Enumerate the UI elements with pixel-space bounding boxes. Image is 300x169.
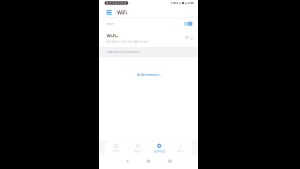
staticText: More (177, 149, 184, 153)
button[interactable]: Recents (159, 157, 181, 165)
button[interactable]: Home (138, 157, 159, 165)
button[interactable]: Settings (148, 141, 170, 155)
staticText: Off (185, 36, 189, 40)
button[interactable]: WLAN (99, 18, 198, 29)
staticText: Settings (154, 150, 165, 153)
staticText: Wi-Fi+ (107, 33, 118, 38)
staticText: Apps (134, 149, 141, 153)
staticText: AVAILABLE NETWORKS (107, 50, 139, 54)
staticText: Enhanced Internet experience (107, 40, 149, 43)
button[interactable]: Home (105, 141, 127, 155)
button[interactable]: Wi-Fi+ (99, 29, 198, 47)
staticText: WiFi (117, 9, 127, 16)
button[interactable]: Apps (127, 141, 148, 155)
button[interactable]: Back (116, 157, 138, 165)
button[interactable]: Add network... (99, 71, 198, 77)
staticText: Home (112, 149, 120, 153)
button[interactable]: Menu (103, 6, 115, 18)
staticText: WLAN (107, 22, 114, 25)
staticText: Add network... (137, 72, 162, 77)
button[interactable]: More (170, 141, 191, 155)
